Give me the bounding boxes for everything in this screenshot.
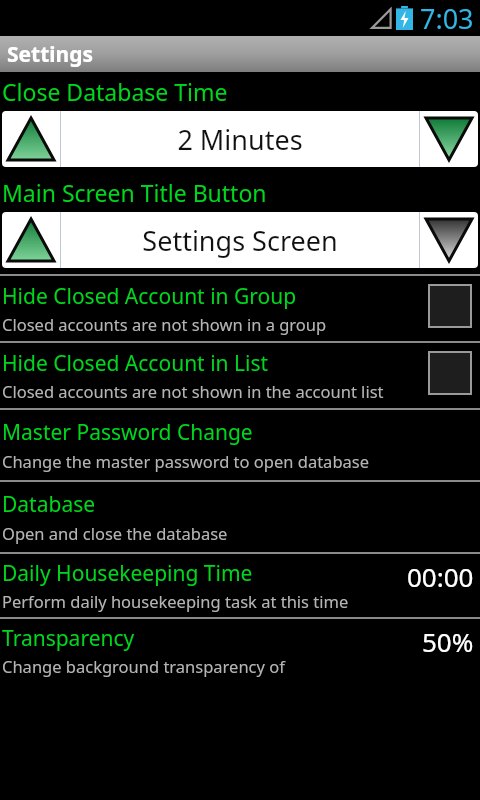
button[interactable]: Database [0, 482, 480, 552]
button[interactable]: Toggle Hide Closed Account in Group [428, 284, 472, 328]
button[interactable]: Increase [2, 212, 60, 268]
staticText: Change the master password to open datab… [2, 450, 369, 472]
staticText: Main Screen Title Button [2, 177, 267, 208]
button[interactable]: Transparency [0, 619, 480, 682]
button[interactable]: Daily Housekeeping Time [0, 554, 480, 617]
staticText: Change background transparency of [2, 655, 285, 677]
staticText: Settings Screen [142, 222, 338, 259]
staticText: Master Password Change [2, 418, 253, 447]
staticText: Hide Closed Account in Group [2, 282, 297, 311]
button[interactable]: Hide Closed Account in Group [0, 276, 480, 341]
staticText: Hide Closed Account in List [2, 349, 269, 378]
button[interactable]: Decrease [420, 111, 478, 167]
staticText: Settings [7, 40, 94, 69]
staticText: 7:03 [420, 0, 474, 36]
button[interactable]: Master Password Change [0, 410, 480, 480]
button[interactable]: Settings Screen [61, 212, 419, 268]
button[interactable]: Decrease [420, 212, 478, 268]
button[interactable]: Toggle Hide Closed Account in List [428, 351, 472, 395]
staticText: Close Database Time [2, 76, 228, 107]
staticText: 00:00 [407, 559, 474, 594]
staticText: 2 Minutes [177, 121, 303, 158]
button[interactable]: 2 Minutes [61, 111, 419, 167]
staticText: Transparency [2, 624, 135, 653]
staticText: Database [2, 490, 96, 519]
staticText: Daily Housekeeping Time [2, 559, 253, 588]
button[interactable]: Hide Closed Account in List [0, 343, 480, 408]
button[interactable]: Increase [2, 111, 60, 167]
staticText: Closed accounts are not shown in the acc… [2, 380, 384, 402]
staticText: Perform daily housekeeping task at this … [2, 590, 349, 612]
staticText: 50% [422, 624, 474, 659]
staticText: Closed accounts are not shown in a group [2, 313, 327, 335]
staticText: Open and close the database [2, 522, 228, 544]
